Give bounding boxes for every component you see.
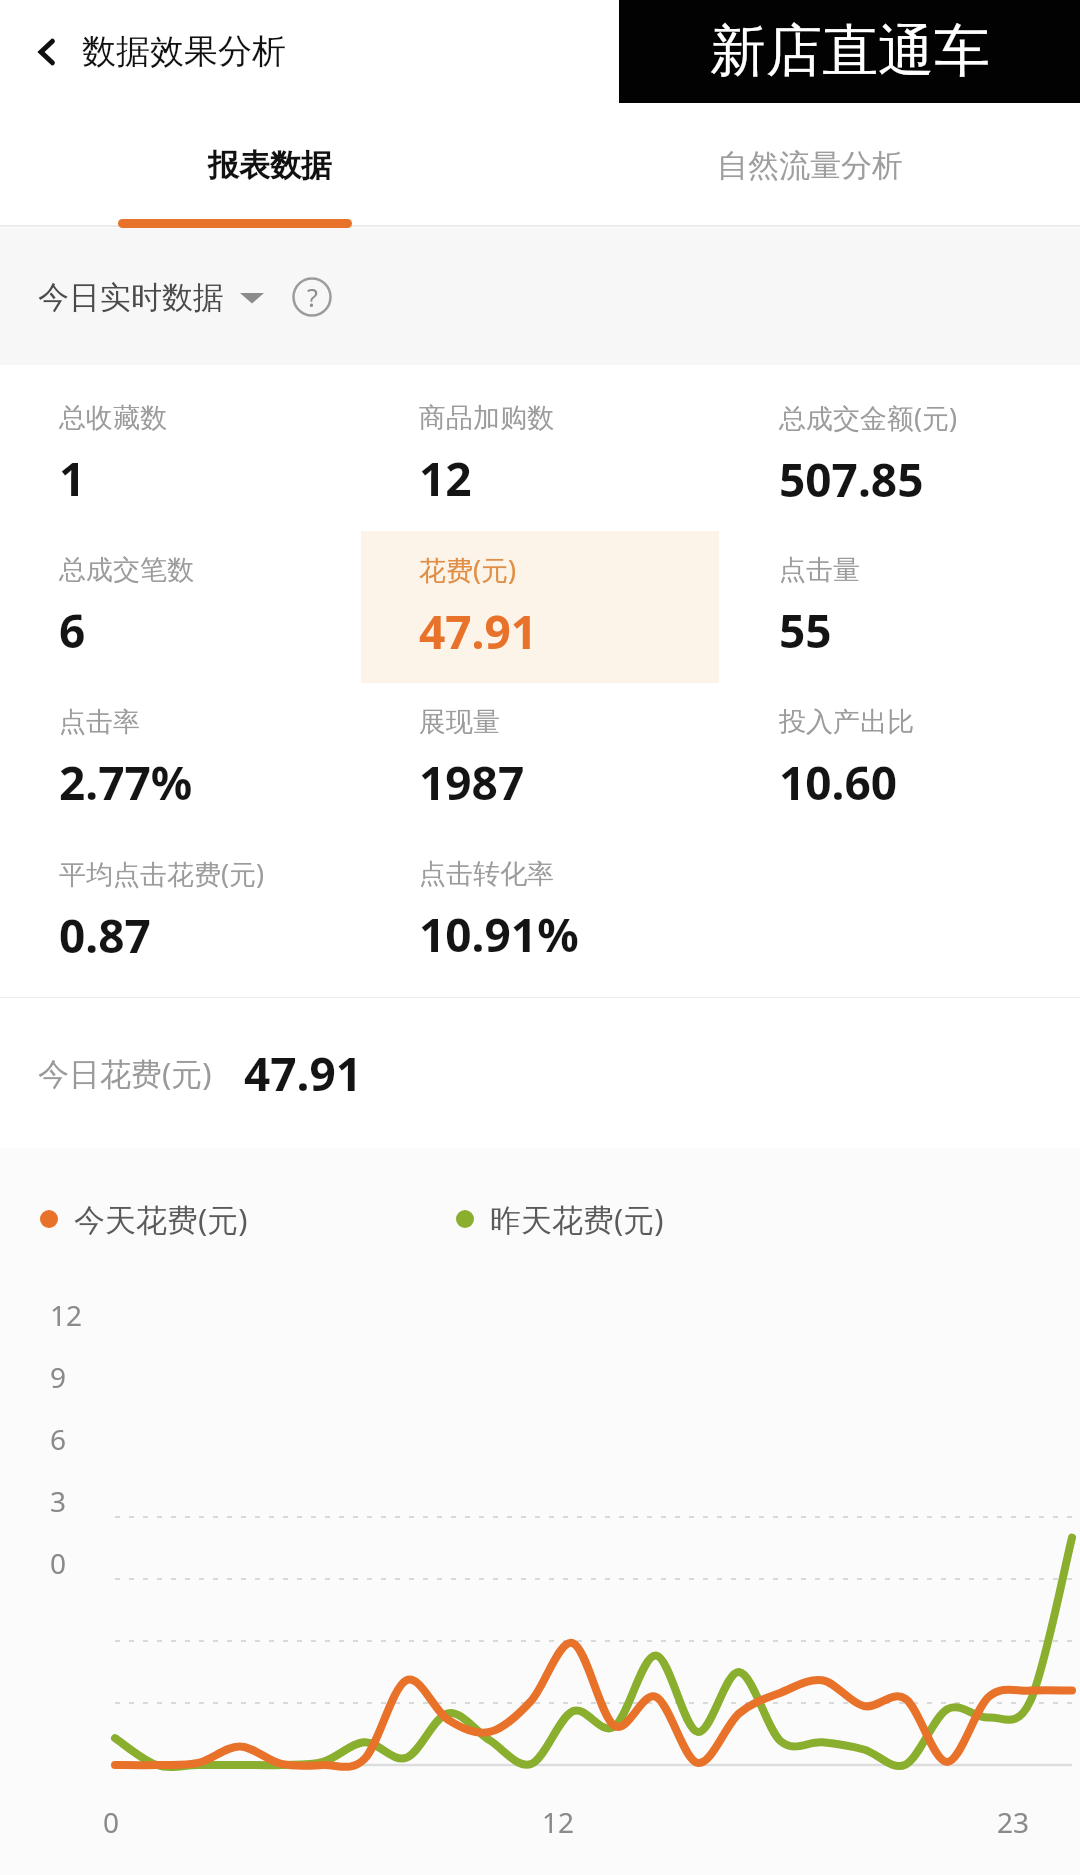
staticText: 12 [419,447,472,510]
staticText: 1987 [419,751,525,814]
staticText: 12 [50,1296,83,1334]
staticText: 总收藏数 [59,401,167,435]
staticText: 点击量 [779,553,860,587]
button[interactable]: 总成交笔数 [1,531,359,683]
staticText: 47.91 [244,1042,363,1105]
staticText: 507.85 [779,448,924,511]
button[interactable]: 今日实时数据 [38,278,264,317]
staticText: 23 [997,1803,1030,1841]
button[interactable]: 展现量 [361,683,719,835]
staticText: 6 [50,1420,67,1458]
button[interactable]: 总成交金额(元) [721,379,1079,531]
button[interactable]: 报表数据 [0,103,540,228]
staticText: 0 [103,1803,120,1841]
button[interactable]: 商品加购数 [361,379,719,531]
staticText: 总成交笔数 [59,553,194,587]
button[interactable]: 投入产出比 [721,683,1079,835]
staticText: 总成交金额(元) [779,399,958,436]
button[interactable]: 今天花费(元) [40,1198,248,1240]
button[interactable]: 点击率 [1,683,359,835]
staticText: 55 [779,599,832,662]
staticText: 今日实时数据 [38,278,224,317]
staticText: 2.77% [59,751,193,814]
button[interactable]: 花费(元) [361,531,719,683]
staticText: 0 [50,1544,67,1582]
staticText: 0.87 [59,904,151,967]
staticText: 10.91% [419,903,579,966]
staticText: 投入产出比 [779,705,914,739]
button[interactable]: 点击转化率 [361,835,719,987]
button[interactable]: 平均点击花费(元) [1,835,359,987]
staticText: 10.60 [779,751,898,814]
staticText: 花费(元) [419,551,517,588]
button[interactable]: Back [22,27,72,77]
staticText: 12 [542,1803,575,1841]
staticText: 47.91 [419,600,538,663]
button[interactable]: 自然流量分析 [540,103,1080,228]
staticText: 点击转化率 [419,857,554,891]
staticText: 昨天花费(元) [490,1198,664,1240]
staticText: 9 [50,1358,67,1396]
staticText: 新店直通车 [710,16,990,87]
staticText: 3 [50,1482,67,1520]
staticText: 今天花费(元) [74,1198,248,1240]
staticText: 平均点击花费(元) [59,855,265,892]
button[interactable]: 总收藏数 [1,379,359,531]
staticText: 展现量 [419,705,500,739]
staticText: 6 [59,599,86,662]
staticText: ? [307,280,318,314]
button[interactable]: 点击量 [721,531,1079,683]
staticText: 1 [59,447,86,510]
staticText: 报表数据 [208,146,332,185]
staticText: 今日花费(元) [38,1052,212,1094]
staticText: 点击率 [59,705,140,739]
staticText: 数据效果分析 [82,30,286,73]
button[interactable]: 昨天花费(元) [456,1198,664,1240]
staticText: 自然流量分析 [717,146,903,185]
button[interactable]: Help [290,275,334,319]
staticText: 商品加购数 [419,401,554,435]
